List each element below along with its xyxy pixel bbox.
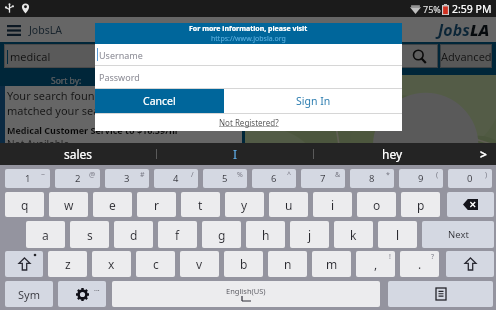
- staticText: Not Available: [7, 137, 70, 151]
- staticText: %: [237, 170, 243, 180]
- button[interactable]: 7: [301, 169, 345, 188]
- staticText: matched your search criteria.: [7, 103, 159, 118]
- button[interactable]: o: [357, 192, 396, 217]
- button[interactable]: Sign In: [224, 89, 402, 113]
- button[interactable]: d: [114, 221, 153, 248]
- staticText: n: [284, 256, 292, 272]
- button[interactable]: sales: [0, 143, 156, 165]
- button[interactable]: j: [290, 221, 329, 248]
- staticText: !: [389, 252, 391, 262]
- staticText: c: [153, 256, 159, 272]
- button[interactable]: Shift: [446, 251, 494, 277]
- staticText: ...: [94, 284, 100, 294]
- button[interactable]: Not Registered?: [219, 117, 279, 128]
- button[interactable]: y: [225, 192, 264, 217]
- staticText: ,: [374, 256, 378, 272]
- staticText: ): [485, 170, 488, 180]
- button[interactable]: 4: [154, 169, 198, 188]
- staticText: 2:59 PM: [452, 2, 492, 16]
- staticText: Your search found 500 job(s) that: [7, 88, 178, 103]
- button[interactable]: hey: [314, 143, 470, 165]
- staticText: /: [191, 170, 194, 180]
- staticText: ^: [287, 170, 292, 180]
- staticText: s: [87, 227, 93, 243]
- staticText: Sym: [18, 287, 40, 302]
- button[interactable]: Advanced: [440, 44, 492, 68]
- button[interactable]: r: [137, 192, 176, 217]
- button[interactable]: q: [5, 192, 44, 217]
- staticText: Medical Customer Service to $16.39/hr: [7, 124, 179, 136]
- button[interactable]: 0: [448, 169, 492, 188]
- button[interactable]: h: [246, 221, 285, 248]
- button[interactable]: w: [49, 192, 88, 217]
- button[interactable]: Next: [422, 221, 494, 248]
- button[interactable]: x: [92, 251, 131, 277]
- button[interactable]: Menu: [4, 20, 24, 40]
- staticText: I: [233, 146, 238, 162]
- button[interactable]: m: [312, 251, 351, 277]
- staticText: ~: [41, 170, 46, 180]
- button[interactable]: z: [48, 251, 87, 277]
- button[interactable]: f: [158, 221, 197, 248]
- staticText: Not Registered?: [219, 117, 279, 128]
- staticText: i: [331, 197, 335, 213]
- button[interactable]: Backspace: [447, 192, 494, 217]
- staticText: *: [386, 170, 390, 180]
- button[interactable]: 1: [5, 169, 50, 188]
- staticText: Sort by:: [51, 75, 82, 86]
- button[interactable]: a: [26, 221, 65, 248]
- staticText: medical: [10, 49, 51, 64]
- staticText: d: [130, 227, 138, 243]
- staticText: o: [373, 197, 381, 213]
- button[interactable]: Search: [401, 44, 438, 68]
- button[interactable]: b: [224, 251, 263, 277]
- staticText: 9: [418, 172, 424, 185]
- staticText: 4: [173, 172, 179, 185]
- staticText: sales: [64, 146, 93, 162]
- button[interactable]: 5: [203, 169, 247, 188]
- button[interactable]: k: [334, 221, 373, 248]
- button[interactable]: 6: [252, 169, 296, 188]
- staticText: 2: [75, 172, 81, 185]
- button[interactable]: Cancel: [95, 89, 224, 113]
- button[interactable]: 3: [105, 169, 149, 188]
- button[interactable]: Settings: [58, 281, 106, 307]
- staticText: q: [21, 197, 29, 213]
- button[interactable]: t: [181, 192, 220, 217]
- button[interactable]: v: [180, 251, 219, 277]
- staticText: (: [436, 170, 439, 180]
- staticText: j: [308, 227, 312, 243]
- button[interactable]: ,: [356, 251, 395, 277]
- staticText: .: [418, 256, 422, 272]
- staticText: JobsLA: [29, 23, 62, 37]
- button[interactable]: n: [268, 251, 307, 277]
- staticText: #: [140, 170, 145, 180]
- staticText: u: [285, 197, 293, 213]
- button[interactable]: Hide keyboard: [388, 281, 493, 307]
- button[interactable]: 2: [55, 169, 100, 188]
- button[interactable]: I: [157, 143, 313, 165]
- staticText: https://www.jobsla.org: [211, 34, 286, 44]
- button[interactable]: p: [401, 192, 440, 217]
- button[interactable]: c: [136, 251, 175, 277]
- button[interactable]: .: [400, 251, 439, 277]
- button[interactable]: u: [269, 192, 308, 217]
- staticText: 8: [369, 172, 375, 185]
- button[interactable]: s: [70, 221, 109, 248]
- button[interactable]: l: [378, 221, 417, 248]
- button[interactable]: Sym: [5, 281, 53, 307]
- button[interactable]: 8: [350, 169, 394, 188]
- staticText: Username: [99, 49, 143, 61]
- staticText: y: [241, 197, 248, 213]
- button[interactable]: Shift: [5, 251, 43, 277]
- button[interactable]: Space: [112, 281, 380, 307]
- button[interactable]: g: [202, 221, 241, 248]
- button[interactable]: More suggestions: [470, 143, 496, 165]
- staticText: w: [64, 197, 74, 213]
- button[interactable]: e: [93, 192, 132, 217]
- staticText: 5: [222, 172, 228, 185]
- button[interactable]: 9: [399, 169, 443, 188]
- button[interactable]: i: [313, 192, 352, 217]
- staticText: ?: [431, 252, 435, 262]
- staticText: >: [480, 146, 487, 162]
